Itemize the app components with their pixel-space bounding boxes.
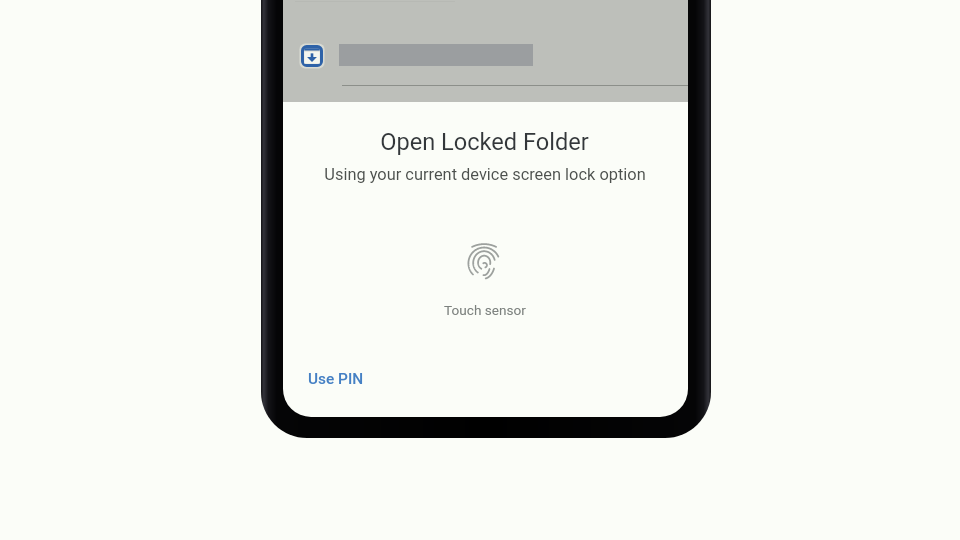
staticText: Touch sensor xyxy=(444,302,526,318)
staticText: Use PIN xyxy=(308,370,364,388)
staticText: Using your current device screen lock op… xyxy=(324,165,646,184)
staticText: Open Locked Folder xyxy=(380,128,589,156)
button[interactable]: Move to Locked Folder xyxy=(301,45,323,67)
button[interactable]: Fingerprint sensor xyxy=(466,241,502,283)
button[interactable]: Use PIN xyxy=(302,365,370,393)
